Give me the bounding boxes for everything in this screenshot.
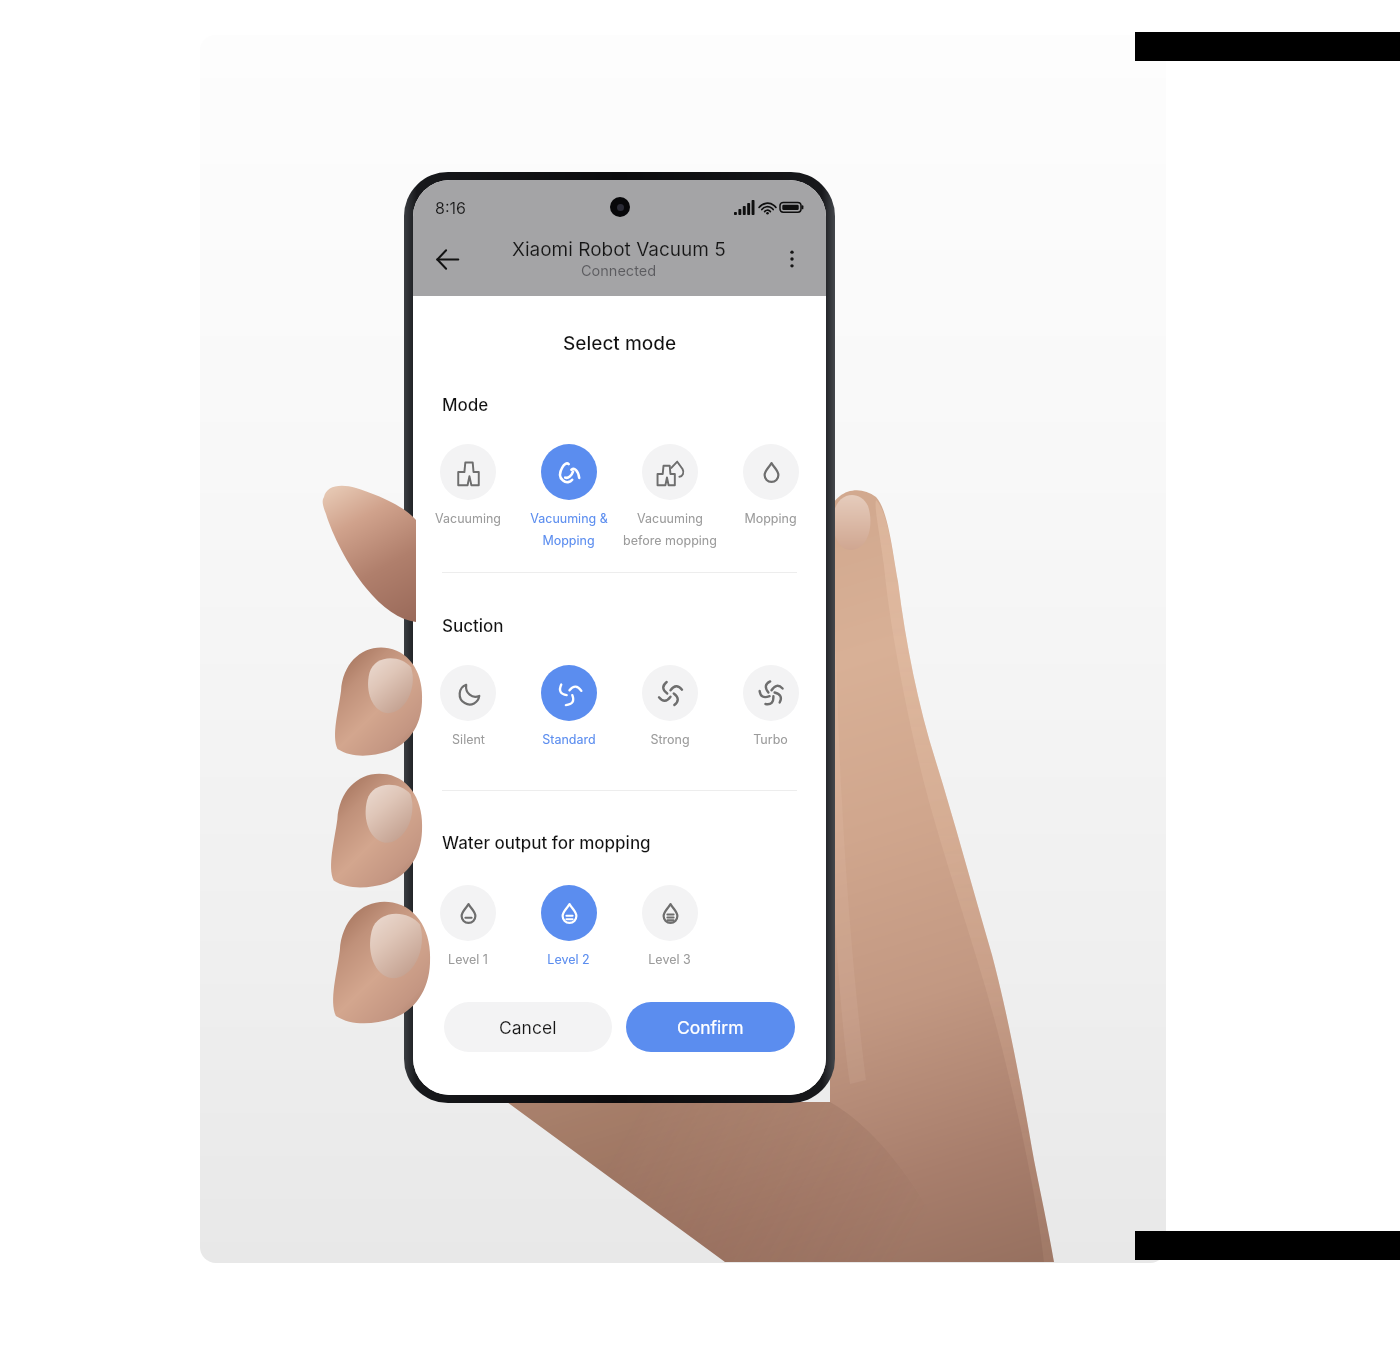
staticText: Xiaomi Robot Vacuum 5 (512, 238, 726, 261)
staticText: Vacuuming (435, 511, 501, 526)
button[interactable]: Vacuuming (418, 444, 518, 526)
staticText: Level 1 (448, 952, 488, 967)
staticText: Level 2 (547, 952, 590, 967)
button[interactable]: Mopping (720, 444, 821, 526)
button[interactable]: Silent (418, 665, 518, 747)
button[interactable]: Level 1 (418, 885, 518, 967)
staticText: Strong (650, 732, 690, 747)
button[interactable]: More options (771, 238, 813, 280)
button[interactable]: Strong (619, 665, 720, 747)
staticText: Turbo (753, 732, 788, 747)
staticText: Level 3 (648, 952, 691, 967)
staticText: Connected (581, 262, 657, 280)
staticText: Vacuuming (637, 511, 703, 526)
staticText: Suction (442, 616, 504, 637)
staticText: Mode (442, 395, 489, 416)
button[interactable]: Cancel (444, 1002, 612, 1052)
staticText: Vacuuming & (530, 511, 608, 526)
button[interactable]: Confirm (626, 1002, 795, 1052)
staticText: Water output for mopping (442, 833, 651, 854)
staticText: Standard (542, 732, 596, 747)
button[interactable]: Turbo (720, 665, 821, 747)
staticText: before mopping (623, 533, 717, 548)
staticText: Confirm (677, 1017, 744, 1038)
staticText: Mopping (744, 511, 797, 526)
staticText: Select mode (563, 332, 677, 355)
button[interactable]: Vacuuming (619, 444, 720, 548)
staticText: 8:16 (435, 198, 466, 217)
button[interactable]: Vacuuming & (518, 444, 619, 548)
staticText: Mopping (542, 533, 595, 548)
button[interactable]: Standard (518, 665, 619, 747)
button[interactable]: Level 3 (619, 885, 720, 967)
button[interactable]: Back (426, 238, 468, 280)
staticText: Silent (452, 732, 485, 747)
staticText: Cancel (499, 1017, 557, 1038)
button[interactable]: Level 2 (518, 885, 619, 967)
